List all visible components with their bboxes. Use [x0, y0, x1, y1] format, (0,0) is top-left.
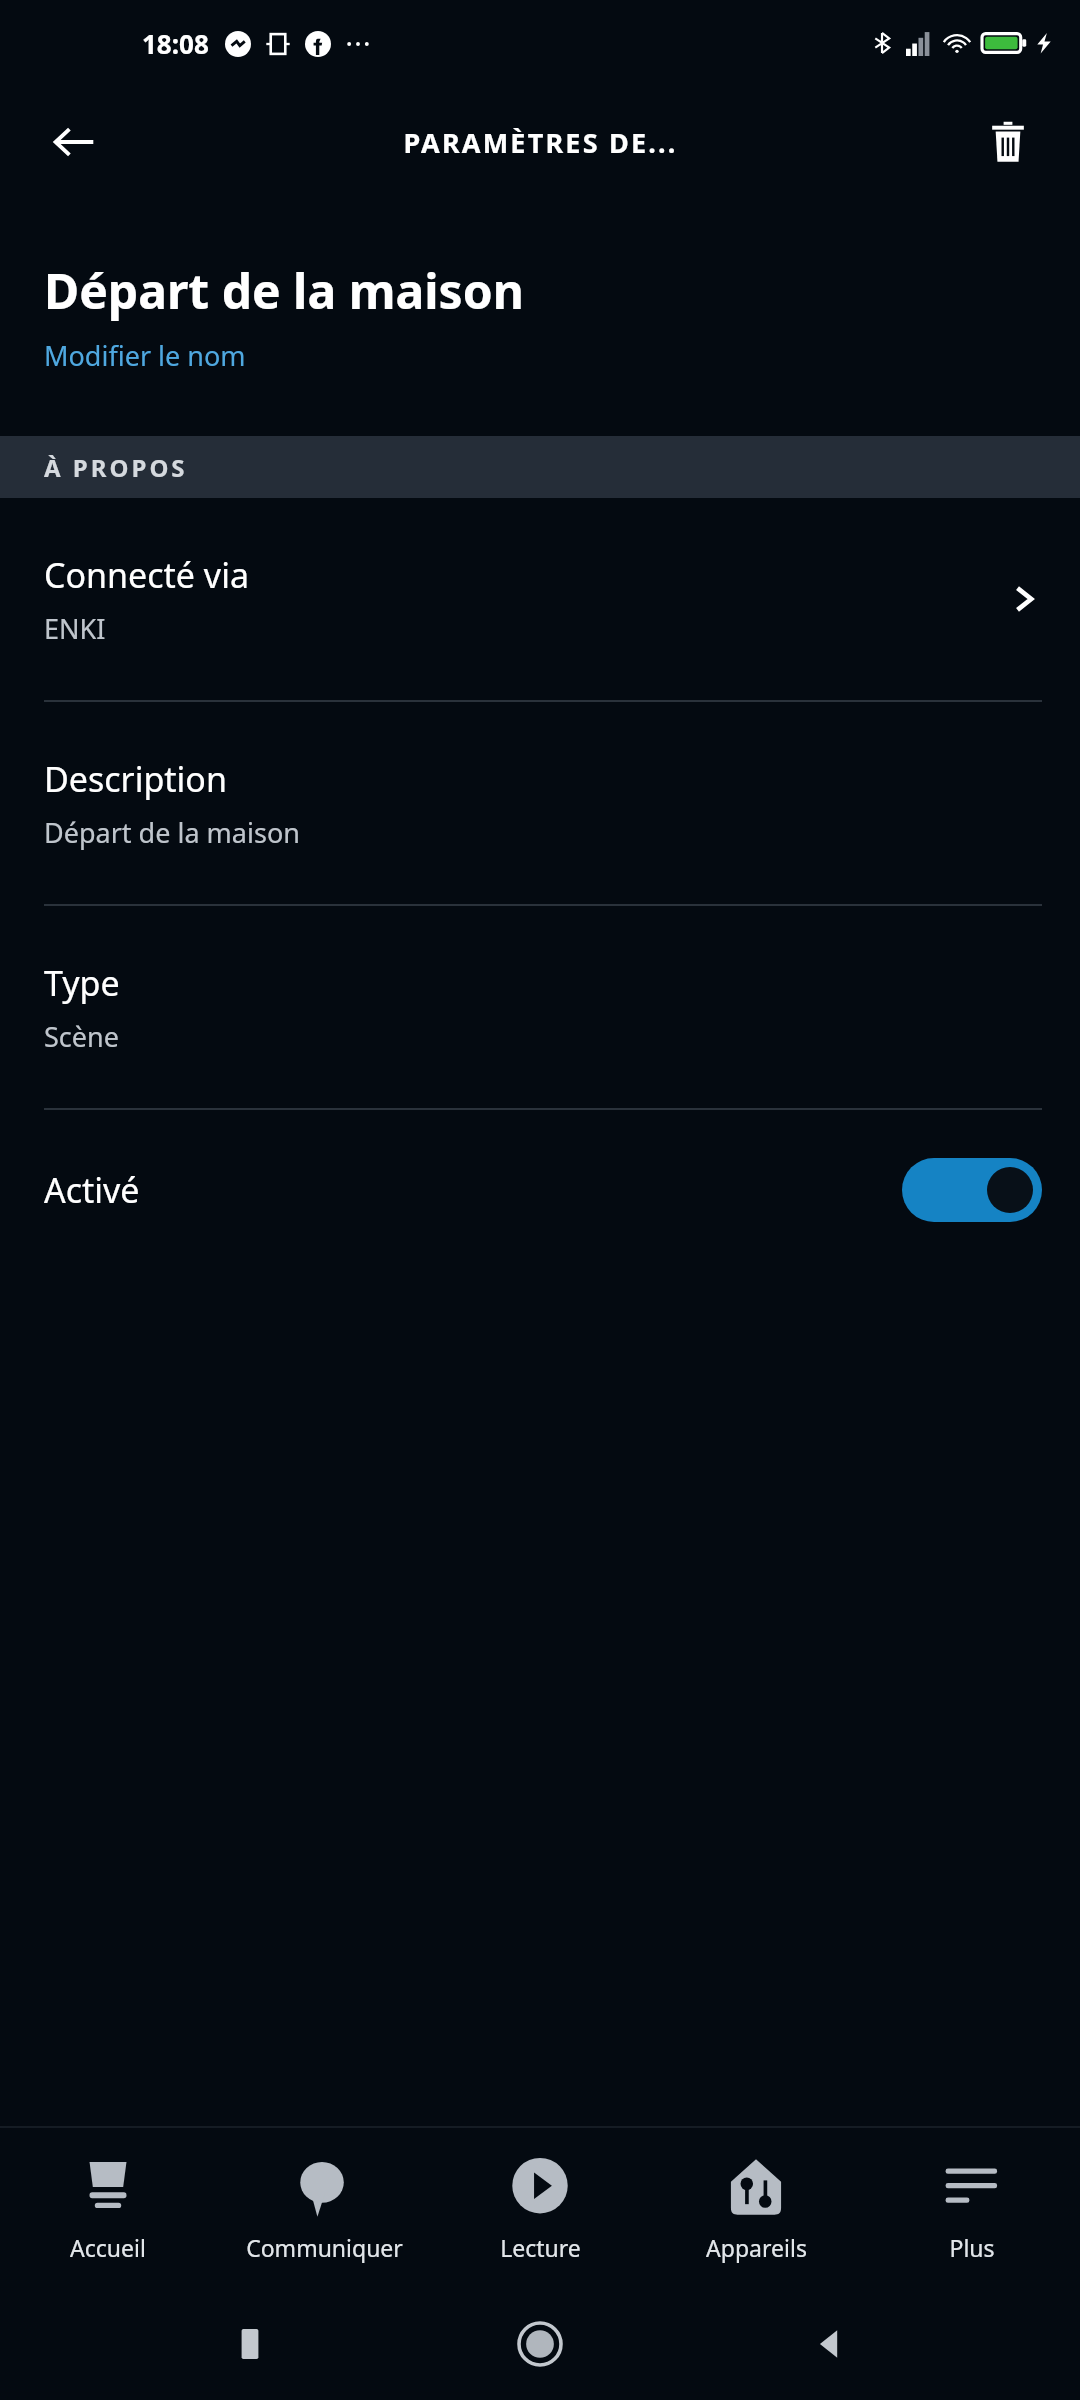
button[interactable]: Connecté via: [0, 498, 1080, 700]
staticText: Modifier le nom: [44, 337, 246, 374]
button[interactable]: Modifier le nom: [44, 337, 246, 374]
button[interactable]: Accueil: [0, 2146, 216, 2271]
staticText: Lecture: [500, 2232, 581, 2263]
button[interactable]: Récents: [210, 2304, 290, 2384]
button[interactable]: Activé: [902, 1158, 1042, 1222]
staticText: Départ de la maison: [44, 258, 524, 323]
staticText: Activé: [44, 1167, 902, 1213]
button[interactable]: Lecture: [432, 2146, 648, 2271]
button[interactable]: Description: [0, 702, 1080, 904]
staticText: Accueil: [70, 2232, 146, 2263]
button[interactable]: Supprimer: [968, 102, 1048, 182]
staticText: PARAMÈTRES DE...: [403, 124, 678, 161]
button[interactable]: Plus: [864, 2146, 1080, 2271]
staticText: Type: [44, 960, 120, 1006]
staticText: Appareils: [706, 2232, 807, 2263]
staticText: Plus: [949, 2232, 995, 2263]
staticText: 18:08: [142, 26, 209, 61]
button[interactable]: Accueil: [500, 2304, 580, 2384]
staticText: Départ de la maison: [44, 814, 300, 851]
staticText: Communiquer: [246, 2232, 403, 2263]
staticText: À PROPOS: [44, 451, 188, 484]
button[interactable]: Type: [0, 906, 1080, 1108]
staticText: Description: [44, 756, 227, 802]
staticText: Scène: [44, 1018, 119, 1055]
button[interactable]: Retour: [34, 102, 114, 182]
button[interactable]: Activé: [0, 1110, 1080, 1270]
button[interactable]: Communiquer: [216, 2146, 432, 2271]
button[interactable]: Appareils: [648, 2146, 864, 2271]
button[interactable]: Retour: [790, 2304, 870, 2384]
staticText: ENKI: [44, 610, 106, 647]
staticText: Connecté via: [44, 552, 249, 598]
